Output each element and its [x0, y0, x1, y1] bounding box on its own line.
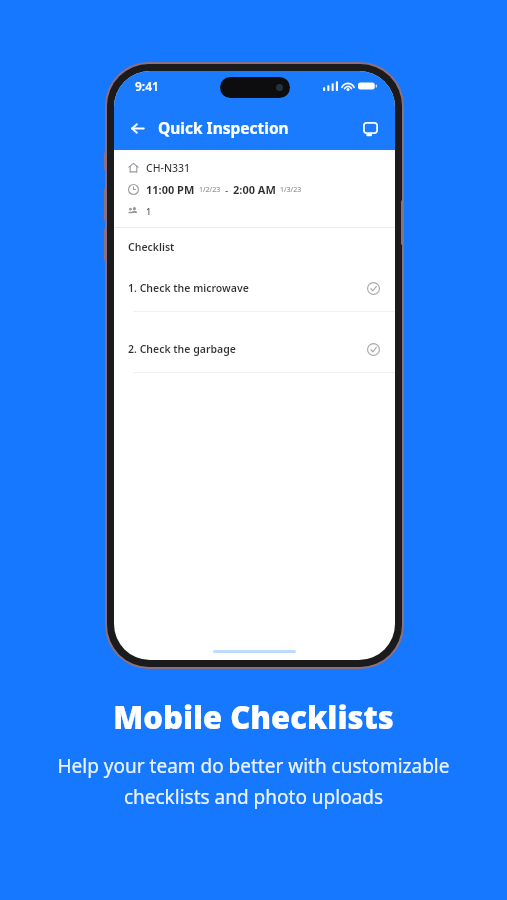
staticText: 1/3/23 [280, 185, 302, 195]
staticText: Checklist [128, 240, 175, 254]
staticText: CH-N331 [146, 161, 191, 175]
staticText: 2:00 AM [233, 182, 276, 197]
staticText: 1. Check the microwave [128, 281, 249, 295]
staticText: Mobile Checklists [113, 696, 394, 738]
button[interactable]: 1. Check the microwave [114, 265, 395, 326]
button[interactable]: Messages [355, 113, 385, 143]
staticText: 2. Check the garbage [128, 342, 236, 356]
staticText: - [225, 183, 229, 197]
staticText: Help your team do better with customizab… [20, 753, 487, 810]
staticText: 9:41 [135, 78, 159, 94]
staticText: 1/2/23 [199, 185, 221, 195]
staticText: 1 [146, 205, 152, 217]
staticText: Quick Inspection [158, 117, 289, 138]
staticText: 11:00 PM [146, 182, 195, 197]
button[interactable]: 2. Check the garbage [114, 326, 395, 387]
button[interactable]: Back [122, 113, 152, 143]
